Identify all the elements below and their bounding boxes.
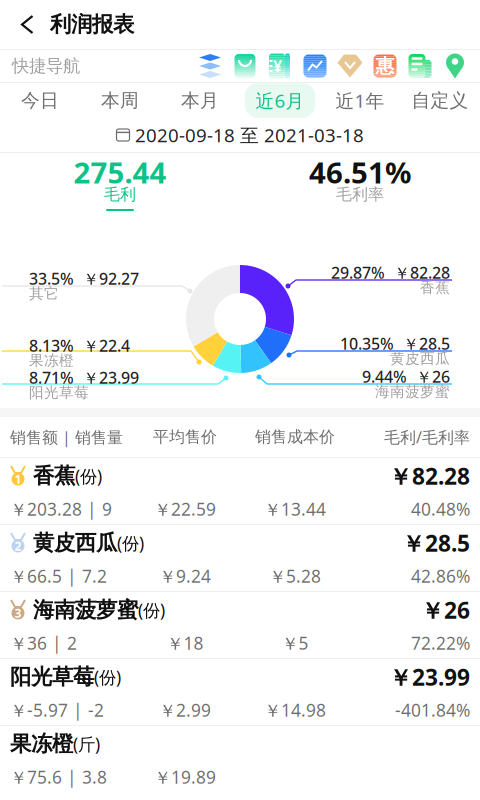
staticText: 2020-09-18 至 2021-03-18 bbox=[135, 123, 364, 147]
button[interactable]: Quick nav 4 bbox=[302, 52, 328, 80]
staticText: (份) bbox=[117, 531, 144, 554]
staticText: 近1年 bbox=[335, 88, 384, 113]
staticText: 利润报表 bbox=[50, 11, 134, 38]
staticText: ￥66.5 | 7.2 bbox=[10, 564, 107, 587]
staticText: ￥-5.97 | -2 bbox=[10, 698, 104, 721]
button[interactable]: 果冻橙 bbox=[0, 726, 480, 792]
staticText: ￥18 bbox=[166, 631, 203, 654]
button[interactable]: Quick nav 6 bbox=[372, 52, 398, 80]
button[interactable]: 3 bbox=[0, 592, 480, 659]
staticText: 快捷导航 bbox=[12, 55, 80, 77]
button[interactable]: 275.44 bbox=[0, 153, 240, 232]
staticText: -401.84% bbox=[395, 698, 470, 721]
staticText: (份) bbox=[75, 464, 102, 487]
button[interactable]: 2 bbox=[0, 525, 480, 592]
staticText: ￥36 | 2 bbox=[10, 631, 77, 654]
staticText: (份) bbox=[94, 665, 121, 688]
staticText: ￥2.99 bbox=[159, 698, 211, 721]
staticText: ￥82.28 bbox=[394, 262, 450, 283]
button[interactable]: 2020-09-18 至 2021-03-18 bbox=[0, 118, 480, 152]
staticText: 29.87% bbox=[331, 262, 385, 283]
button[interactable]: 1 bbox=[0, 458, 480, 525]
staticText: ￥22.4 bbox=[83, 335, 130, 356]
staticText: 销售额 | 销售量 bbox=[10, 426, 123, 448]
staticText: ￥13.44 bbox=[264, 497, 326, 520]
staticText: 本周 bbox=[101, 89, 139, 112]
staticText: 8.71% bbox=[29, 367, 74, 388]
staticText: ¥ bbox=[273, 55, 282, 77]
staticText: ￥26 bbox=[421, 595, 470, 625]
button[interactable]: Quick nav 7 bbox=[407, 52, 433, 80]
staticText: ￥23.99 bbox=[389, 662, 470, 692]
staticText: ￥75.6 | 3.8 bbox=[10, 765, 107, 788]
button[interactable]: Back bbox=[8, 0, 46, 49]
staticText: 香蕉 bbox=[33, 463, 75, 489]
staticText: ￥19.89 bbox=[154, 765, 216, 788]
staticText: ￥26 bbox=[416, 366, 450, 387]
staticText: ￥14.98 bbox=[264, 698, 326, 721]
staticText: 9.44% bbox=[362, 366, 407, 387]
staticText: ￥22.59 bbox=[154, 497, 216, 520]
button[interactable]: 近1年 bbox=[320, 83, 400, 118]
staticText: 1 bbox=[14, 471, 21, 487]
button[interactable]: Quick nav 5 bbox=[337, 52, 363, 80]
staticText: 果冻橙 bbox=[10, 731, 73, 757]
button[interactable]: 今日 bbox=[0, 83, 80, 118]
staticText: 阳光草莓 bbox=[29, 383, 89, 401]
staticText: ￥28.5 bbox=[403, 333, 450, 354]
staticText: 黄皮西瓜 bbox=[33, 530, 117, 556]
staticText: 本月 bbox=[181, 89, 219, 112]
staticText: ￥23.99 bbox=[83, 367, 139, 388]
staticText: 毛利率 bbox=[336, 185, 384, 204]
staticText: 香蕉 bbox=[420, 278, 450, 296]
staticText: 平均售价 bbox=[153, 427, 217, 447]
staticText: ￥28.5 bbox=[402, 528, 470, 558]
staticText: 3 bbox=[14, 605, 21, 621]
staticText: 2 bbox=[14, 538, 21, 554]
staticText: 毛利/毛利率 bbox=[384, 426, 470, 448]
staticText: 销售成本价 bbox=[255, 427, 335, 447]
staticText: 惠 bbox=[375, 54, 394, 77]
button[interactable]: 阳光草莓 bbox=[0, 659, 480, 726]
button[interactable]: 本周 bbox=[80, 83, 160, 118]
staticText: 海南菠萝蜜 bbox=[375, 382, 450, 400]
staticText: ￥82.28 bbox=[389, 461, 470, 491]
button[interactable]: Quick nav 2 bbox=[232, 52, 258, 80]
button[interactable]: 自定义 bbox=[400, 83, 480, 118]
staticText: ￥9.24 bbox=[159, 564, 211, 587]
staticText: 275.44 bbox=[73, 152, 166, 191]
staticText: 72.22% bbox=[411, 631, 470, 654]
staticText: 10.35% bbox=[340, 333, 394, 354]
staticText: ￥5.28 bbox=[269, 564, 321, 587]
staticText: 果冻橙 bbox=[29, 351, 74, 369]
staticText: ￥92.27 bbox=[83, 268, 139, 289]
button[interactable]: 本月 bbox=[160, 83, 240, 118]
staticText: 8.13% bbox=[29, 335, 74, 356]
staticText: 42.86% bbox=[411, 564, 470, 587]
button[interactable]: Quick nav 3 bbox=[267, 52, 293, 80]
staticText: 阳光草莓 bbox=[10, 664, 94, 690]
staticText: 自定义 bbox=[411, 89, 468, 112]
staticText: 黄皮西瓜 bbox=[390, 349, 450, 367]
staticText: 毛利 bbox=[104, 185, 136, 204]
staticText: 33.5% bbox=[29, 268, 74, 289]
button[interactable]: 46.51% bbox=[240, 153, 480, 232]
staticText: 其它 bbox=[29, 284, 59, 302]
staticText: 近6月 bbox=[255, 88, 304, 113]
staticText: ￥203.28 | 9 bbox=[10, 497, 112, 520]
staticText: 海南菠萝蜜 bbox=[33, 597, 138, 623]
button[interactable]: Quick nav 8 bbox=[442, 52, 468, 80]
button[interactable]: 近6月 bbox=[240, 83, 320, 118]
staticText: 今日 bbox=[21, 89, 59, 112]
staticText: ￥5 bbox=[281, 631, 308, 654]
staticText: (份) bbox=[138, 598, 165, 621]
staticText: 46.51% bbox=[309, 152, 411, 191]
button[interactable]: Quick nav 1 bbox=[197, 52, 223, 80]
staticText: (斤) bbox=[73, 732, 100, 755]
staticText: 40.48% bbox=[411, 497, 470, 520]
